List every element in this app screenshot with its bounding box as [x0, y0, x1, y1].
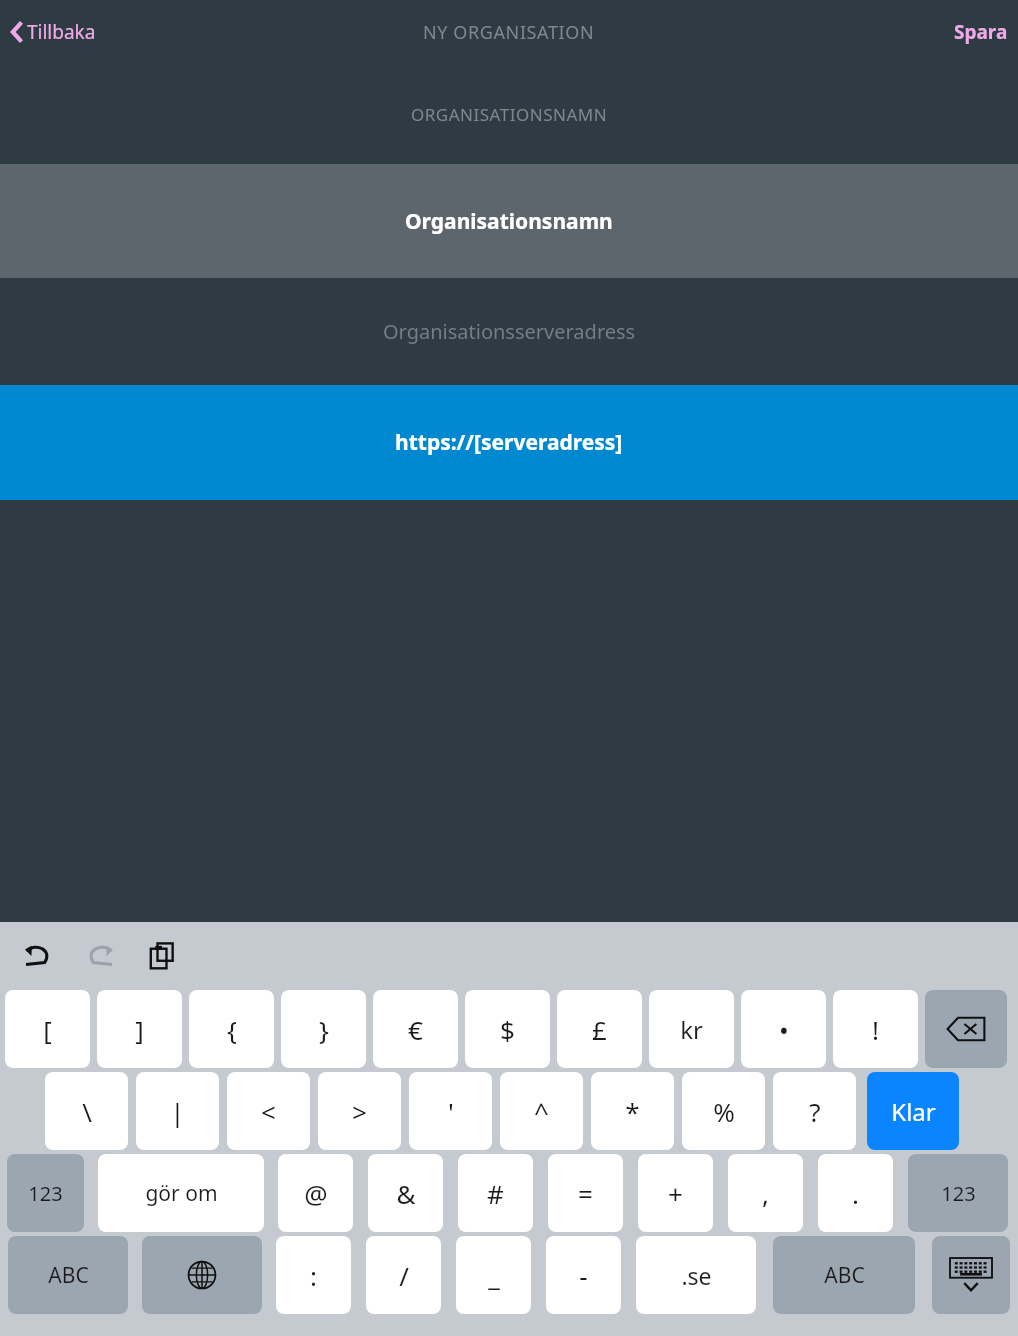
staticText: < — [261, 1094, 276, 1129]
staticText: + — [668, 1176, 683, 1211]
button[interactable]: , — [728, 1154, 803, 1232]
staticText: - — [579, 1258, 588, 1293]
staticText: ABC — [824, 1261, 865, 1290]
staticText: ABC — [48, 1261, 89, 1290]
button[interactable]: • — [741, 990, 826, 1068]
staticText: { — [227, 1012, 237, 1047]
staticText: [ — [43, 1012, 52, 1047]
button[interactable]: ' — [409, 1072, 492, 1150]
staticText: | — [170, 1094, 185, 1129]
button[interactable]: % — [682, 1072, 765, 1150]
button[interactable]: gör om — [98, 1154, 264, 1232]
button[interactable]: Spara — [944, 11, 1018, 53]
button[interactable]: Change keyboard language — [142, 1236, 262, 1314]
staticText: & — [396, 1176, 416, 1211]
button[interactable]: Undo — [16, 934, 60, 978]
button[interactable]: Backspace — [925, 990, 1007, 1068]
button[interactable]: Hide keyboard — [932, 1236, 1010, 1314]
button[interactable]: ABC — [773, 1236, 915, 1314]
button[interactable]: .se — [636, 1236, 756, 1314]
staticText: € — [408, 1012, 423, 1047]
staticText: 123 — [28, 1180, 63, 1207]
button[interactable]: Tillbaka — [6, 13, 100, 51]
button[interactable]: . — [818, 1154, 893, 1232]
button[interactable]: _ — [456, 1236, 531, 1314]
staticText: # — [487, 1176, 504, 1211]
staticText: ? — [809, 1094, 821, 1129]
staticText: .se — [681, 1260, 712, 1291]
staticText: / — [399, 1258, 409, 1293]
button[interactable]: 123 — [7, 1154, 84, 1232]
button[interactable]: [ — [5, 990, 90, 1068]
button[interactable]: = — [548, 1154, 623, 1232]
staticText: _ — [488, 1258, 500, 1293]
staticText: £ — [592, 1012, 607, 1047]
button[interactable]: ^ — [500, 1072, 583, 1150]
staticText: > — [352, 1094, 367, 1129]
staticText: , — [762, 1176, 769, 1211]
staticText: Spara — [954, 19, 1008, 45]
button[interactable]: ] — [97, 990, 182, 1068]
button[interactable]: @ — [278, 1154, 353, 1232]
staticText: Klar — [891, 1095, 936, 1128]
staticText: ^ — [534, 1094, 549, 1129]
staticText: ' — [448, 1094, 454, 1129]
button[interactable]: 123 — [908, 1154, 1008, 1232]
button[interactable]: Paste — [140, 934, 184, 978]
button[interactable]: \ — [45, 1072, 128, 1150]
staticText: ! — [872, 1012, 879, 1047]
staticText: Organisationsnamn — [405, 207, 613, 236]
button[interactable]: | — [136, 1072, 219, 1150]
staticText: } — [319, 1012, 329, 1047]
button[interactable]: ! — [833, 990, 918, 1068]
staticText: • — [779, 1012, 789, 1047]
button[interactable]: / — [366, 1236, 441, 1314]
staticText: ORGANISATIONSNAMN — [411, 103, 608, 126]
staticText: kr — [680, 1013, 703, 1046]
button[interactable]: $ — [465, 990, 550, 1068]
button[interactable]: # — [458, 1154, 533, 1232]
button[interactable]: € — [373, 990, 458, 1068]
button[interactable]: } — [281, 990, 366, 1068]
button[interactable]: + — [638, 1154, 713, 1232]
staticText: Organisationsserveradress — [383, 318, 636, 345]
staticText: NY ORGANISATION — [423, 20, 595, 45]
button[interactable]: - — [546, 1236, 621, 1314]
button[interactable]: < — [227, 1072, 310, 1150]
staticText: https://[serveradress] — [395, 428, 623, 457]
button[interactable]: * — [591, 1072, 674, 1150]
button[interactable]: ABC — [8, 1236, 128, 1314]
staticText: : — [310, 1258, 317, 1293]
staticText: . — [852, 1176, 859, 1211]
staticText: 123 — [941, 1180, 976, 1207]
button[interactable]: kr — [649, 990, 734, 1068]
button[interactable]: £ — [557, 990, 642, 1068]
button[interactable]: ? — [773, 1072, 856, 1150]
staticText: Tillbaka — [27, 19, 96, 45]
button[interactable]: Organisationsnamn — [0, 164, 1018, 278]
button[interactable]: & — [368, 1154, 443, 1232]
button[interactable]: https://[serveradress] — [0, 385, 1018, 500]
staticText: ] — [135, 1012, 144, 1047]
button[interactable]: Redo — [78, 934, 122, 978]
button[interactable]: { — [189, 990, 274, 1068]
button[interactable]: > — [318, 1072, 401, 1150]
staticText: = — [578, 1176, 593, 1211]
staticText: % — [713, 1094, 735, 1129]
staticText: @ — [304, 1176, 328, 1211]
staticText: $ — [500, 1012, 515, 1047]
staticText: gör om — [145, 1179, 218, 1208]
staticText: \ — [82, 1094, 92, 1129]
button[interactable]: Klar — [867, 1072, 959, 1150]
button[interactable]: : — [276, 1236, 351, 1314]
staticText: * — [625, 1094, 640, 1129]
